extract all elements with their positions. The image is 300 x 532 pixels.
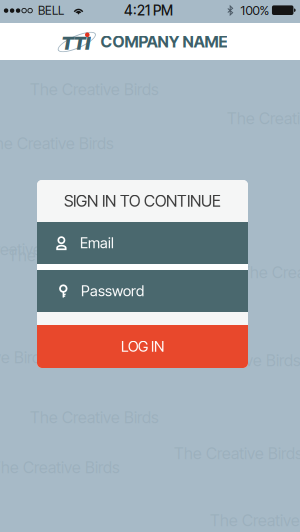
staticText: The Creative Birds (172, 351, 300, 370)
staticText: The Creative Birds (0, 458, 120, 477)
staticText: The Creative Birds (210, 511, 300, 530)
button[interactable]: Email (37, 222, 248, 264)
staticText: SIGN IN TO CONTINUE (64, 191, 221, 211)
staticText: The Creative Birds (0, 348, 49, 367)
staticText: The Creative Birds (0, 134, 114, 153)
button[interactable]: LOG IN (37, 325, 248, 368)
staticText: The Creative Birds (152, 16, 281, 35)
staticText: BELL (38, 3, 64, 17)
staticText: The Creative Birds (174, 444, 300, 463)
staticText: The Creative Birds (240, 263, 300, 282)
staticText: COMPANY NAME (100, 32, 227, 51)
button[interactable]: Password (37, 270, 248, 312)
staticText: TTI (61, 32, 90, 54)
staticText: The Creative Birds (30, 80, 159, 99)
staticText: The Creative Birds (30, 408, 159, 427)
staticText: LOG IN (121, 338, 164, 355)
staticText: The Creative Birds (96, 294, 225, 313)
staticText: The Creative Birds (112, 184, 241, 203)
staticText: The Creative Birds (8, 246, 137, 265)
staticText: Email (80, 234, 114, 252)
staticText: The Creative Birds (0, 240, 81, 259)
staticText: 4:21 PM (124, 2, 173, 19)
staticText: Password (81, 282, 144, 300)
staticText: 100% (240, 3, 269, 18)
staticText: The Creative Birds (227, 109, 300, 128)
